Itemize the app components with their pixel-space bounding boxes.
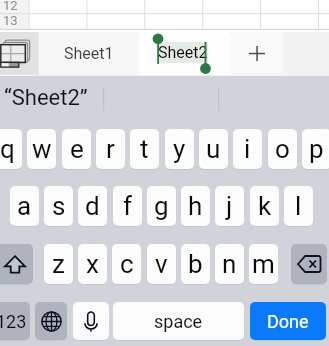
button[interactable]: l (284, 186, 313, 226)
staticText: g (154, 191, 169, 221)
staticText: Done (267, 311, 309, 332)
button[interactable]: Sheets (0, 32, 38, 75)
button[interactable]: h (181, 186, 210, 226)
button[interactable]: v (147, 244, 176, 284)
staticText: Sheet1 (64, 44, 114, 63)
button[interactable]: z (44, 244, 73, 284)
staticText: d (85, 191, 100, 221)
button[interactable]: Sheet1 (39, 32, 138, 75)
staticText: n (222, 249, 237, 279)
staticText: j (226, 191, 233, 221)
button[interactable]: o (268, 129, 297, 169)
staticText: c (120, 249, 134, 279)
button[interactable]: f (113, 186, 142, 226)
button[interactable]: e (62, 129, 91, 169)
button[interactable]: “Sheet2” (4, 85, 88, 111)
button[interactable]: p (302, 129, 329, 169)
staticText: h (188, 191, 203, 221)
button[interactable]: c (112, 244, 141, 284)
button[interactable]: Change keyboard (35, 302, 67, 340)
button[interactable]: space (113, 302, 244, 340)
button[interactable]: Sheet2 (138, 32, 231, 75)
staticText: a (17, 191, 32, 221)
staticText: x (86, 249, 99, 279)
staticText: e (70, 134, 84, 164)
button[interactable]: b (181, 244, 210, 284)
button[interactable]: y (165, 129, 194, 169)
staticText: m (252, 249, 275, 279)
staticText: Sheet2 (158, 43, 208, 62)
button[interactable]: Dictate (73, 302, 109, 340)
staticText: i (244, 134, 251, 164)
button[interactable]: Delete (291, 244, 327, 284)
staticText: r (106, 134, 115, 164)
staticText: 123 (0, 311, 27, 332)
staticText: p (309, 134, 324, 164)
staticText: 12 (3, 0, 18, 13)
staticText: b (188, 249, 203, 279)
staticText: w (32, 134, 52, 164)
button[interactable]: 123 (0, 302, 30, 340)
staticText: z (52, 249, 65, 279)
staticText: 13 (3, 13, 18, 28)
button[interactable]: g (147, 186, 176, 226)
button[interactable]: x (78, 244, 107, 284)
button[interactable]: k (250, 186, 279, 226)
staticText: f (123, 191, 133, 221)
button[interactable]: Shift (0, 244, 33, 284)
staticText: o (275, 134, 290, 164)
button[interactable]: s (44, 186, 73, 226)
staticText: space (154, 311, 203, 332)
button[interactable]: n (215, 244, 244, 284)
staticText: u (206, 134, 221, 164)
button[interactable]: r (96, 129, 125, 169)
button[interactable]: d (78, 186, 107, 226)
staticText: v (155, 249, 168, 279)
button[interactable]: q (0, 129, 22, 169)
staticText: y (173, 134, 186, 164)
button[interactable]: m (249, 244, 278, 284)
button[interactable]: t (130, 129, 159, 169)
button[interactable]: j (215, 186, 244, 226)
staticText: l (295, 191, 302, 221)
button[interactable]: w (27, 129, 56, 169)
button[interactable]: Done (250, 302, 326, 340)
staticText: s (52, 191, 66, 221)
button[interactable]: Add sheet (231, 32, 283, 73)
staticText: t (140, 134, 149, 164)
button[interactable]: u (199, 129, 228, 169)
staticText: k (258, 191, 272, 221)
staticText: q (0, 134, 15, 164)
button[interactable]: a (10, 186, 39, 226)
button[interactable]: i (233, 129, 262, 169)
